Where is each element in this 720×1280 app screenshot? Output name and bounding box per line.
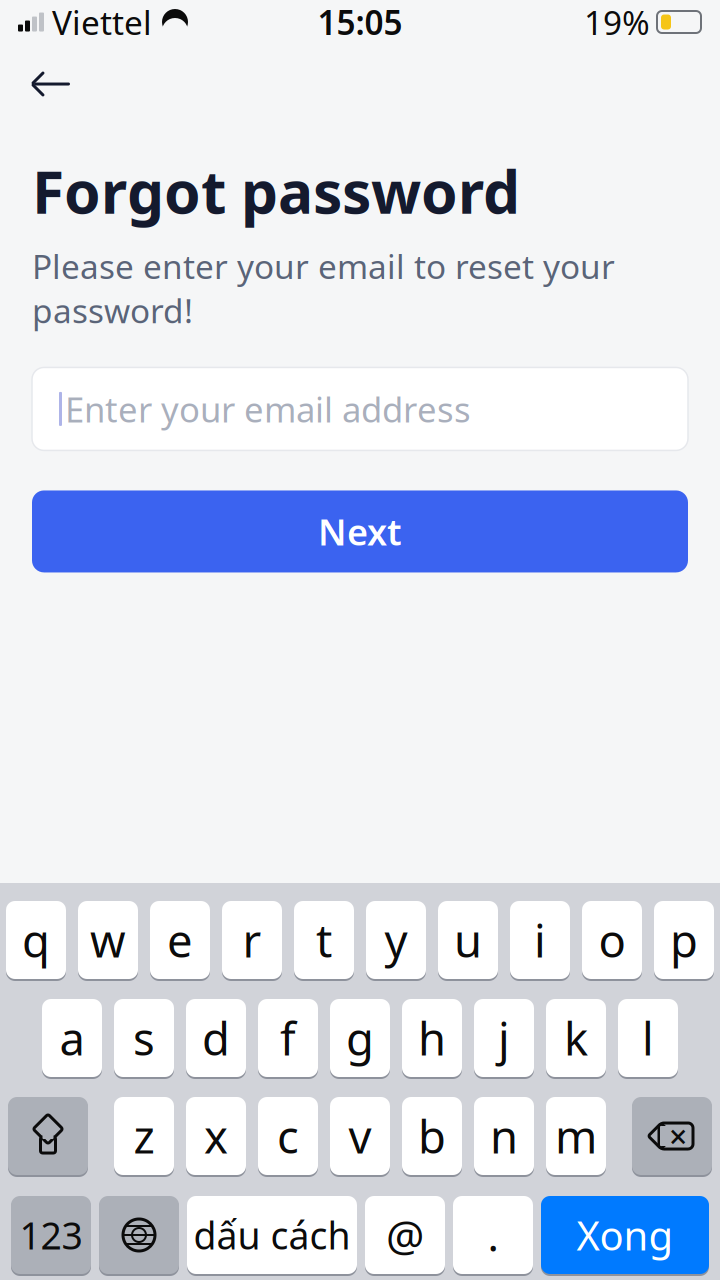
staticText: b [418,1106,446,1166]
button[interactable]: f [258,998,318,1078]
staticText: 15:05 [317,0,402,44]
staticText: × [669,1115,687,1157]
button[interactable]: n [474,1096,534,1176]
button[interactable]: z [114,1096,174,1176]
button[interactable]: c [258,1096,318,1176]
staticText: e [167,910,193,970]
button[interactable]: s [114,998,174,1078]
button[interactable]: v [330,1096,390,1176]
staticText: m [555,1106,597,1166]
staticText: h [418,1008,446,1068]
staticText: Next [318,507,402,555]
staticText: z [133,1106,154,1166]
staticText: p [670,910,698,970]
button[interactable]: Delete [632,1096,712,1176]
staticText: a [59,1008,84,1068]
staticText: g [346,1008,374,1068]
button[interactable]: Period [453,1195,533,1275]
button[interactable]: Back [0,56,74,112]
button[interactable]: y [366,900,426,980]
button[interactable]: p [654,900,714,980]
button[interactable]: Space [187,1195,357,1275]
button[interactable]: Shift [8,1096,88,1176]
button[interactable]: t [294,900,354,980]
button[interactable]: u [438,900,498,980]
staticText: d [202,1008,230,1068]
staticText: . [487,1207,498,1263]
staticText: t [316,910,332,970]
staticText: i [534,910,546,970]
button[interactable]: w [78,900,138,980]
button[interactable]: @ [365,1195,445,1275]
staticText: Forgot password [32,152,520,230]
button[interactable]: d [186,998,246,1078]
button[interactable]: h [402,998,462,1078]
staticText: Enter your email address [65,386,471,432]
staticText: 19% [584,0,650,44]
button[interactable]: Done [541,1195,709,1275]
button[interactable]: r [222,900,282,980]
button[interactable]: b [402,1096,462,1176]
staticText: x [204,1106,228,1166]
button[interactable]: x [186,1096,246,1176]
button[interactable]: Next [32,490,688,572]
staticText: l [642,1008,654,1068]
staticText: v [348,1106,371,1166]
button[interactable]: m [546,1096,606,1176]
button[interactable]: Numbers [11,1195,91,1275]
button[interactable]: l [618,998,678,1078]
staticText: @ [386,1207,424,1263]
staticText: n [490,1106,518,1166]
button[interactable]: i [510,900,570,980]
staticText: o [598,910,625,970]
staticText: 123 [19,1210,82,1260]
staticText: r [242,910,261,970]
button[interactable]: a [42,998,102,1078]
button[interactable]: e [150,900,210,980]
staticText: y [384,910,407,970]
staticText: dấu cách [193,1210,350,1260]
button[interactable]: Next keyboard [99,1195,179,1275]
button[interactable]: Enter your email address [32,367,688,450]
button[interactable]: k [546,998,606,1078]
staticText: f [280,1008,296,1068]
staticText: u [454,910,482,970]
staticText: Xong [576,1208,673,1261]
staticText: q [22,910,50,970]
staticText: s [133,1008,155,1068]
staticText: Please enter your email to reset your pa… [32,244,615,332]
staticText: Viettel [52,0,152,44]
staticText: w [90,910,126,970]
button[interactable]: o [582,900,642,980]
staticText: j [498,1008,510,1068]
button[interactable]: j [474,998,534,1078]
button[interactable]: g [330,998,390,1078]
staticText: c [277,1106,299,1166]
staticText: k [564,1008,588,1068]
button[interactable]: q [6,900,66,980]
